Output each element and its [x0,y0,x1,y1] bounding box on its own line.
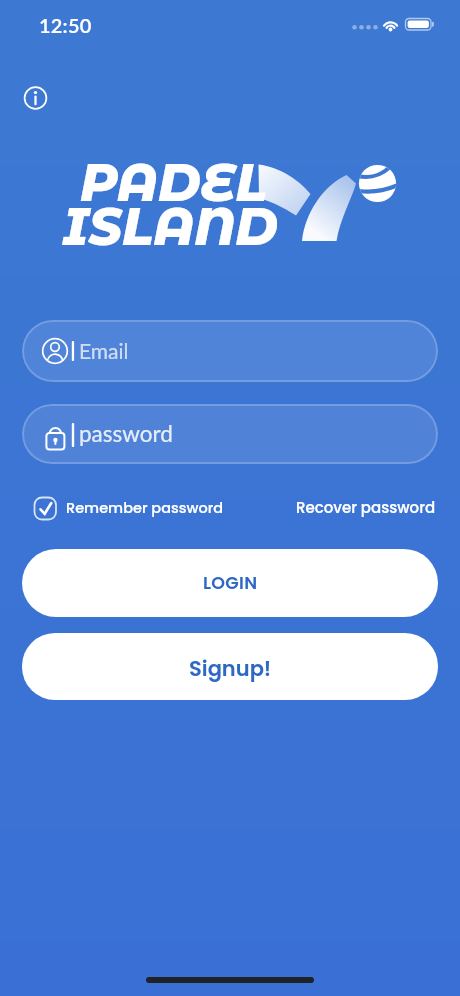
staticText: password [79,420,173,447]
button[interactable] [22,320,438,382]
button[interactable]: Remember password [30,492,220,524]
staticText: Remember password [66,498,224,518]
staticText: ISLAND [63,195,278,258]
button[interactable] [22,404,438,464]
staticText: PADEL [80,151,267,214]
button[interactable]: Recover password [296,497,436,518]
staticText: Signup! [189,654,272,683]
staticText: 12:50 [39,13,92,37]
staticText: Email [79,338,129,363]
button[interactable]: LOGIN [22,549,438,617]
staticText: LOGIN [203,571,258,596]
button[interactable]: Signup! [22,633,438,700]
button[interactable] [22,83,50,111]
staticText: Recover password [296,497,436,518]
